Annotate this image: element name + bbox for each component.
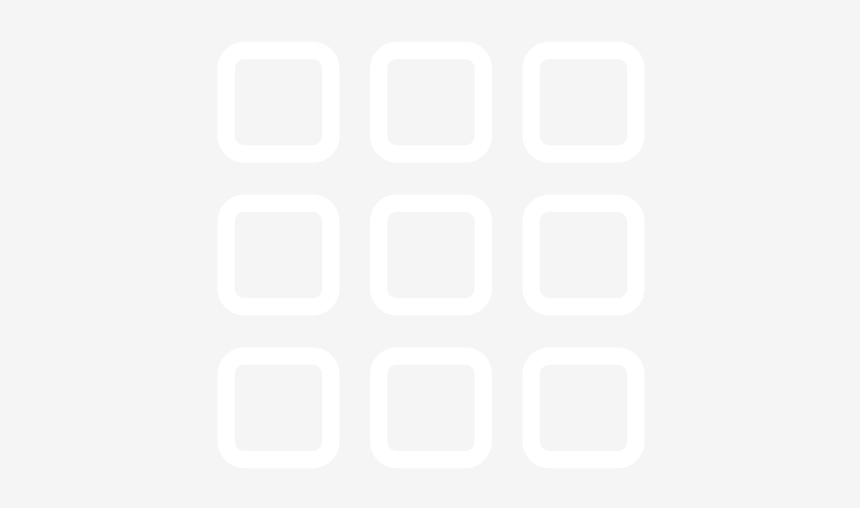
button[interactable]: Tile 1 <box>217 42 339 163</box>
button[interactable]: Tile 4 <box>217 195 339 315</box>
button[interactable]: Tile 2 <box>370 42 492 163</box>
button[interactable]: Tile 6 <box>522 195 644 315</box>
button[interactable]: Tile 5 <box>370 195 492 315</box>
button[interactable]: Tile 3 <box>522 42 644 163</box>
button[interactable]: Tile 7 <box>217 347 339 468</box>
button[interactable]: Tile 8 <box>370 347 492 468</box>
button[interactable]: Tile 9 <box>522 347 644 468</box>
